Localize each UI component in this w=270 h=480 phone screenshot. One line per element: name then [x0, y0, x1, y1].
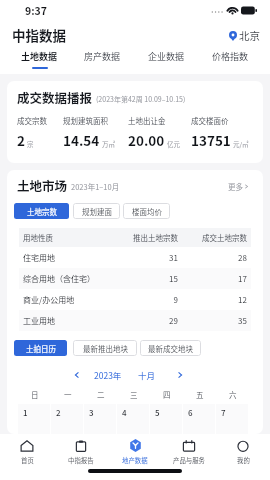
staticText: 我的 — [237, 456, 250, 465]
button[interactable]: 1 — [18, 404, 50, 434]
staticText: 土地数据 — [21, 50, 58, 63]
staticText: 一 — [64, 389, 72, 400]
staticText: 日 — [31, 389, 39, 400]
staticText: 房产数据 — [84, 50, 121, 63]
staticText: 万㎡ — [102, 139, 115, 148]
staticText: 成交宗数 — [17, 115, 47, 126]
button[interactable]: Next month — [173, 368, 186, 381]
staticText: 土地宗数 — [27, 206, 57, 217]
staticText: 企业数据 — [148, 50, 185, 63]
staticText: 综合用地（含住宅） — [23, 273, 110, 285]
staticText: 土地市场 — [17, 176, 68, 194]
button[interactable]: 楼面均价 — [123, 203, 170, 219]
staticText: 6 — [188, 407, 193, 419]
staticText: 29 — [110, 315, 178, 327]
staticText: 3 — [89, 407, 94, 419]
staticText: 最新推出地块 — [83, 343, 128, 354]
staticText: 产品与服务 — [173, 456, 205, 465]
staticText: 推出土地宗数 — [110, 232, 178, 243]
button[interactable]: 5 — [150, 404, 182, 434]
staticText: 首页 — [21, 456, 34, 465]
staticText: 中指数据 — [12, 25, 66, 45]
button[interactable]: 规划建面 — [73, 203, 120, 219]
staticText: 亿元 — [167, 139, 180, 148]
button[interactable]: 中指报告 — [54, 439, 108, 465]
button[interactable]: 企业数据 — [134, 48, 198, 74]
button[interactable]: 首页 — [0, 439, 54, 465]
staticText: 成交楼面价 — [191, 115, 229, 126]
staticText: 十月 — [138, 369, 156, 381]
staticText: 楼面均价 — [132, 206, 162, 217]
staticText: 9:37 — [25, 3, 47, 18]
staticText: 住宅用地 — [23, 252, 110, 264]
button[interactable]: 土拍日历 — [14, 340, 67, 356]
button[interactable]: 最新成交地块 — [140, 340, 201, 356]
button[interactable]: 产品与服务 — [162, 439, 216, 465]
staticText: 15 — [110, 273, 178, 285]
staticText: 9 — [110, 294, 178, 306]
button[interactable]: 3 — [84, 404, 116, 434]
staticText: 五 — [196, 389, 204, 400]
staticText: 2 — [56, 407, 61, 419]
button[interactable]: Previous month — [70, 368, 83, 381]
button[interactable]: 房产数据 — [71, 48, 134, 74]
staticText: 工业用地 — [23, 315, 110, 327]
staticText: 地产数据 — [122, 456, 148, 465]
staticText: 1 — [23, 407, 28, 419]
staticText: 规划建面 — [82, 206, 112, 217]
staticText: 31 — [110, 252, 178, 264]
staticText: 商业/办公用地 — [23, 294, 110, 306]
staticText: 12 — [178, 294, 247, 306]
staticText: 元/㎡ — [233, 139, 249, 148]
button[interactable]: 6 — [183, 404, 215, 434]
staticText: 7 — [221, 407, 226, 419]
staticText: 14.54 — [63, 130, 100, 150]
button[interactable]: 2 — [51, 404, 83, 434]
staticText: 北京 — [239, 28, 260, 43]
staticText: 20.00 — [128, 130, 165, 150]
staticText: 成交土地宗数 — [178, 232, 247, 243]
staticText: 2 — [17, 130, 25, 150]
button[interactable]: 价格指数 — [198, 48, 262, 74]
staticText: 二 — [97, 389, 105, 400]
staticText: 5 — [155, 407, 160, 419]
staticText: 35 — [178, 315, 247, 327]
button[interactable]: 我的 — [216, 439, 270, 465]
staticText: 三 — [130, 389, 138, 400]
staticText: 成交数据播报 — [17, 88, 93, 106]
staticText: 价格指数 — [212, 50, 249, 63]
button[interactable]: 更多 — [228, 181, 249, 194]
button[interactable]: 7 — [216, 404, 248, 434]
staticText: 土地出让金 — [128, 115, 166, 126]
button[interactable]: 土地宗数 — [14, 203, 69, 219]
button[interactable]: 北京 — [229, 28, 270, 43]
staticText: 2023年1–10月 — [71, 181, 120, 192]
button[interactable]: 最新推出地块 — [73, 340, 137, 356]
staticText: 4 — [122, 407, 127, 419]
staticText: 中指报告 — [68, 456, 94, 465]
staticText: 宗 — [27, 139, 34, 148]
staticText: 六 — [229, 389, 237, 400]
staticText: 土拍日历 — [26, 343, 56, 354]
staticText: 2023年 — [94, 369, 122, 381]
staticText: 28 — [178, 252, 247, 264]
staticText: (2023年第42周 10.09–10.15) — [96, 94, 186, 104]
staticText: 13751 — [191, 130, 231, 150]
button[interactable]: 4 — [117, 404, 149, 434]
staticText: 四 — [163, 389, 171, 400]
staticText: 用地性质 — [23, 232, 110, 243]
staticText: 更多 — [228, 181, 243, 192]
button[interactable]: 地产数据 — [108, 439, 162, 465]
staticText: 规划建筑面积 — [63, 115, 108, 126]
staticText: 17 — [178, 273, 247, 285]
button[interactable]: 土地数据 — [8, 48, 71, 74]
staticText: 最新成交地块 — [148, 343, 193, 354]
